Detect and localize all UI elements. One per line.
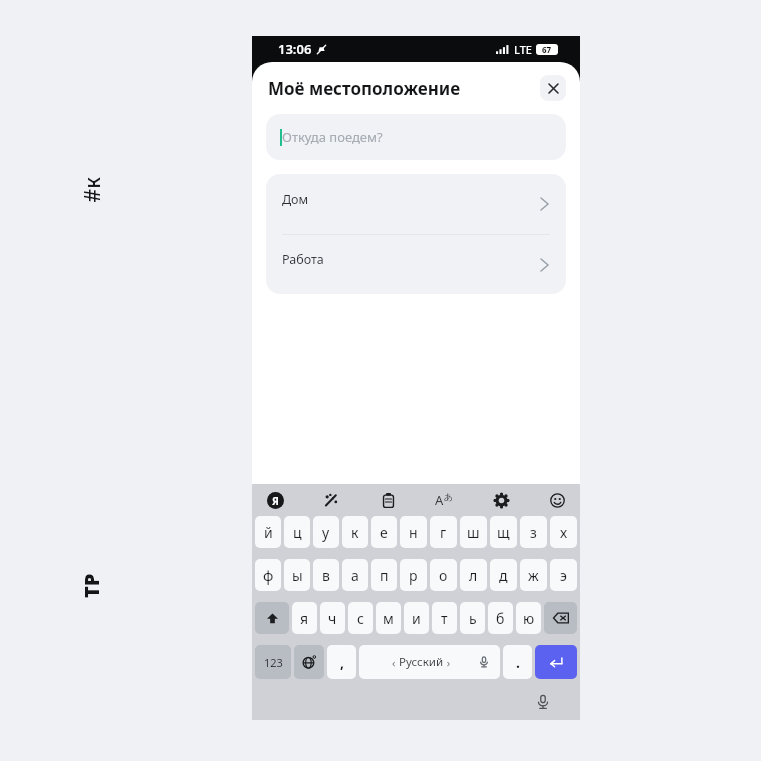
button[interactable]: Settings	[488, 487, 514, 513]
staticText: Откуда поедем?	[282, 128, 383, 146]
button[interactable]: я	[292, 602, 317, 634]
staticText: ф	[263, 566, 274, 585]
staticText: с	[357, 609, 364, 628]
button[interactable]: 123	[255, 645, 291, 679]
staticText: г	[440, 523, 447, 542]
button[interactable]: Backspace	[544, 602, 577, 634]
button[interactable]: э	[550, 559, 577, 591]
button[interactable]: .	[503, 645, 532, 679]
button[interactable]: б	[488, 602, 513, 634]
staticText: щ	[497, 523, 510, 542]
button[interactable]: к	[342, 516, 368, 548]
button[interactable]: й	[255, 516, 281, 548]
staticText: р	[409, 566, 418, 585]
staticText: ы	[292, 566, 303, 585]
button[interactable]: з	[520, 516, 547, 548]
button[interactable]: Дом	[266, 174, 566, 234]
staticText: о	[439, 566, 448, 585]
staticText: й	[264, 523, 273, 542]
button[interactable]: щ	[490, 516, 517, 548]
button[interactable]: п	[371, 559, 397, 591]
staticText: з	[530, 523, 537, 542]
button[interactable]: Shift	[255, 602, 289, 634]
staticText: Русский	[399, 654, 444, 670]
button[interactable]: е	[371, 516, 397, 548]
button[interactable]: Translate	[431, 487, 457, 513]
staticText: Дом	[282, 191, 309, 208]
staticText: и	[412, 609, 421, 628]
button[interactable]: Yandex	[262, 487, 288, 513]
staticText: A	[435, 491, 444, 509]
button[interactable]: д	[490, 559, 517, 591]
staticText: ц	[293, 523, 302, 542]
staticText: ч	[328, 609, 337, 628]
button[interactable]: н	[400, 516, 427, 548]
button[interactable]: а	[342, 559, 368, 591]
button[interactable]: Close	[540, 75, 566, 101]
staticText: ›	[444, 655, 451, 670]
button[interactable]: м	[376, 602, 401, 634]
button[interactable]: л	[460, 559, 487, 591]
staticText: Работа	[282, 251, 324, 268]
staticText: в	[322, 566, 330, 585]
button[interactable]: Работа	[266, 235, 566, 294]
button[interactable]: р	[400, 559, 427, 591]
staticText: ь	[469, 609, 477, 628]
button[interactable]: у	[313, 516, 339, 548]
button[interactable]: Magic	[318, 487, 344, 513]
staticText: 123	[264, 655, 283, 670]
button[interactable]: о	[430, 559, 457, 591]
button[interactable]: г	[430, 516, 457, 548]
staticText: м	[383, 609, 394, 628]
button[interactable]: Откуда поедем?	[266, 114, 566, 160]
staticText: ж	[528, 566, 539, 585]
staticText: 13:06	[278, 40, 312, 58]
staticText: #каршеринг	[78, 172, 112, 208]
staticText: ТРУШЕРИНГ	[78, 568, 112, 604]
button[interactable]: Language	[294, 645, 324, 679]
staticText: е	[380, 523, 388, 542]
staticText: .	[516, 653, 520, 672]
button[interactable]: ,	[327, 645, 356, 679]
staticText: Моё местоположение	[268, 77, 461, 100]
button[interactable]: Clipboard	[375, 487, 401, 513]
button[interactable]: Voice input	[530, 689, 556, 715]
staticText: ,	[340, 653, 344, 672]
button[interactable]: ц	[284, 516, 310, 548]
button[interactable]: с	[348, 602, 373, 634]
staticText: 67	[542, 44, 552, 55]
staticText: ю	[523, 609, 535, 628]
staticText: т	[441, 609, 448, 628]
button[interactable]: ‹	[359, 645, 500, 679]
staticText: あ	[444, 491, 454, 502]
staticText: Я	[272, 494, 279, 508]
staticText: LTE	[514, 42, 532, 57]
button[interactable]: ю	[516, 602, 541, 634]
staticText: б	[496, 609, 505, 628]
button[interactable]: ш	[460, 516, 487, 548]
button[interactable]: ы	[284, 559, 310, 591]
button[interactable]: х	[550, 516, 577, 548]
staticText: а	[351, 566, 359, 585]
button[interactable]: ф	[255, 559, 281, 591]
staticText: я	[300, 609, 309, 628]
staticText: п	[380, 566, 389, 585]
staticText: н	[409, 523, 418, 542]
staticText: д	[499, 566, 508, 585]
staticText: ш	[467, 523, 480, 542]
button[interactable]: т	[432, 602, 457, 634]
staticText: ‹	[392, 655, 399, 670]
staticText: э	[560, 566, 567, 585]
staticText: х	[560, 523, 568, 542]
button[interactable]: ж	[520, 559, 547, 591]
button[interactable]: Enter	[535, 645, 577, 679]
button[interactable]: и	[404, 602, 429, 634]
staticText: у	[322, 523, 330, 542]
staticText: л	[469, 566, 478, 585]
button[interactable]: в	[313, 559, 339, 591]
button[interactable]: ь	[460, 602, 485, 634]
button[interactable]: ч	[320, 602, 345, 634]
button[interactable]: Emoji	[544, 487, 570, 513]
staticText: к	[351, 523, 359, 542]
